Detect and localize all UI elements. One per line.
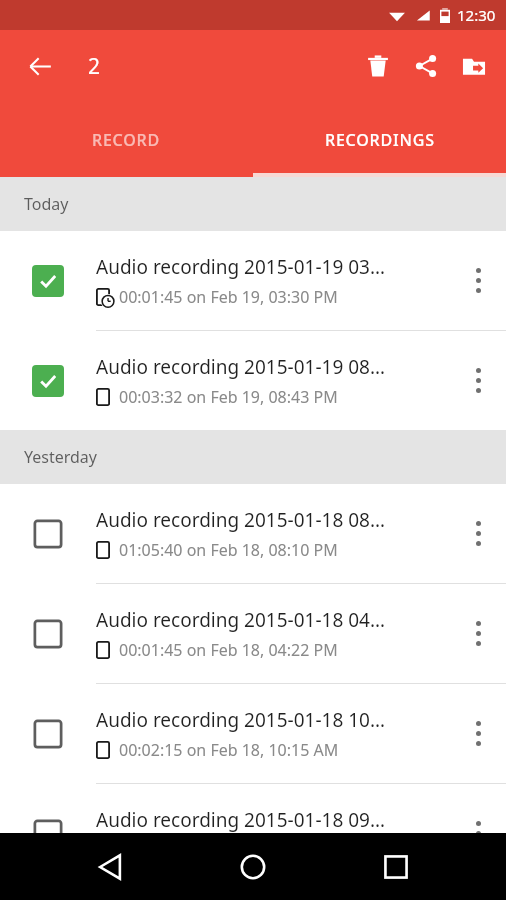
button[interactable]: Not selected <box>0 484 96 583</box>
button[interactable]: Not selected <box>0 684 506 783</box>
button[interactable]: Not selected <box>0 584 96 683</box>
staticText: RECORDINGS <box>325 129 435 151</box>
staticText: 00:02:15 on Feb 18, 10:15 AM <box>119 739 339 761</box>
button[interactable]: More options <box>450 331 506 430</box>
button[interactable]: 2 <box>88 44 128 88</box>
button[interactable]: Selected <box>0 331 96 430</box>
button[interactable]: Home <box>229 843 277 891</box>
button[interactable]: Share <box>402 42 450 90</box>
button[interactable]: Back <box>18 44 62 88</box>
button[interactable]: More options <box>450 684 506 783</box>
staticText: Audio recording 2015-01-18 08… <box>96 507 386 533</box>
button[interactable]: Selected <box>0 331 506 430</box>
staticText: 00:04:10 on Feb 18, 09:05 AM <box>119 839 339 861</box>
staticText: Audio recording 2015-01-18 09… <box>96 807 386 833</box>
staticText: 00:03:32 on Feb 19, 08:43 PM <box>119 386 338 408</box>
button[interactable]: Selected <box>0 231 96 330</box>
button[interactable]: RECORDINGS <box>253 102 506 177</box>
button[interactable]: More options <box>450 584 506 683</box>
button[interactable]: Delete <box>354 42 402 90</box>
staticText: RECORD <box>92 129 161 151</box>
staticText: 00:01:45 on Feb 18, 04:22 PM <box>119 639 338 661</box>
button[interactable]: More options <box>450 484 506 583</box>
button[interactable]: Not selected <box>0 484 506 583</box>
staticText: 00:01:45 on Feb 19, 03:30 PM <box>119 286 338 308</box>
button[interactable]: Not selected <box>0 784 506 883</box>
staticText: 12:30 <box>457 5 496 25</box>
button[interactable]: Not selected <box>0 684 96 783</box>
staticText: Today <box>24 193 69 215</box>
staticText: 2 <box>88 52 101 81</box>
button[interactable]: Move to folder <box>450 42 498 90</box>
button[interactable]: RECORD <box>0 102 253 177</box>
button[interactable]: More options <box>450 231 506 330</box>
button[interactable]: More options <box>450 784 506 883</box>
button[interactable]: Recents <box>372 843 420 891</box>
staticText: Audio recording 2015-01-18 10… <box>96 707 386 733</box>
staticText: Audio recording 2015-01-19 03… <box>96 254 386 280</box>
staticText: Audio recording 2015-01-18 04… <box>96 607 386 633</box>
staticText: Audio recording 2015-01-19 08… <box>96 354 386 380</box>
button[interactable]: Not selected <box>0 784 96 883</box>
button[interactable]: Back <box>86 843 134 891</box>
button[interactable]: Selected <box>0 231 506 330</box>
staticText: 01:05:40 on Feb 18, 08:10 PM <box>119 539 338 561</box>
button[interactable]: Not selected <box>0 584 506 683</box>
staticText: Yesterday <box>24 446 98 468</box>
